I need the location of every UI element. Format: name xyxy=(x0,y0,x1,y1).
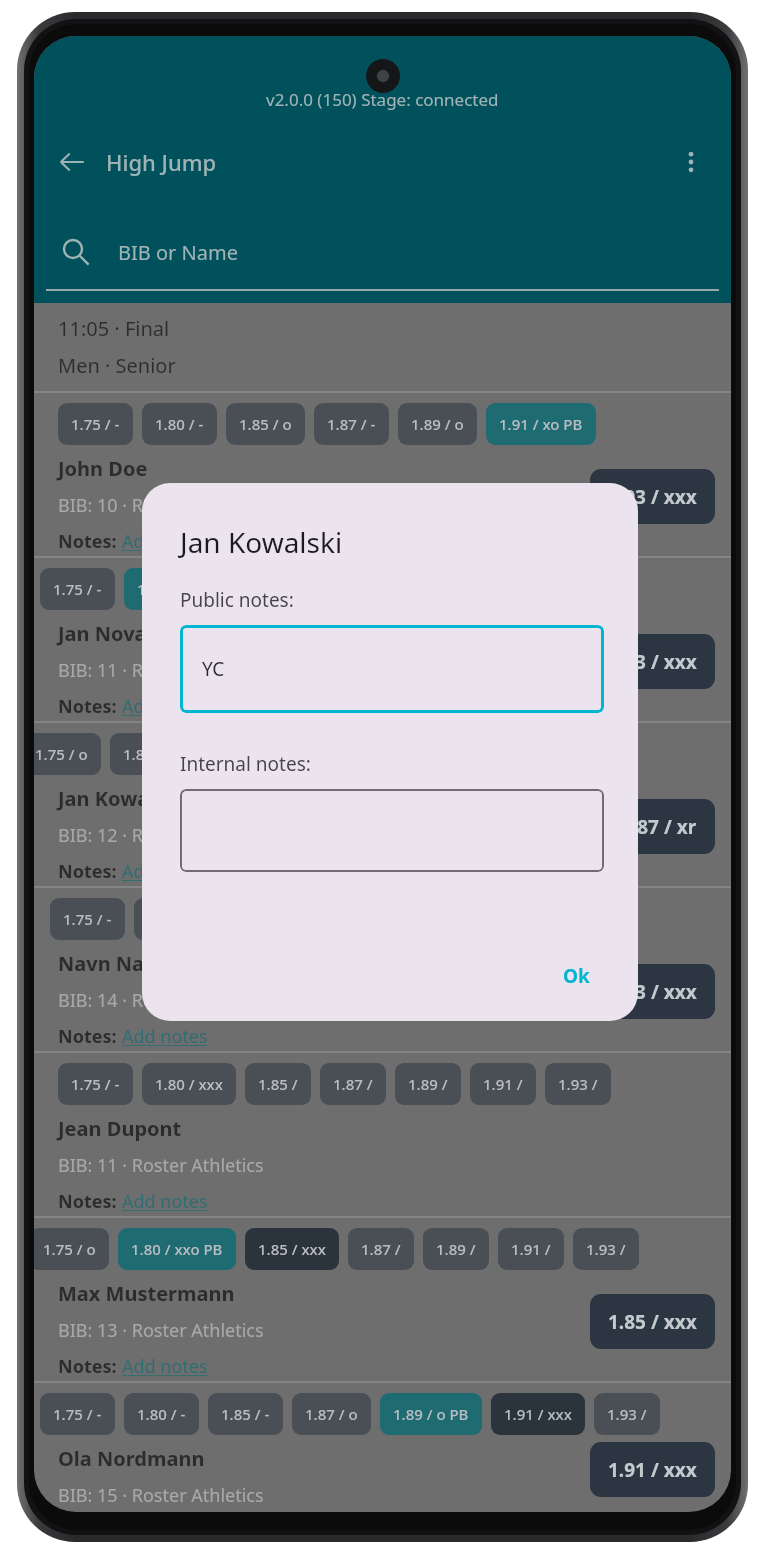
button[interactable]: 1.75 / o xyxy=(34,733,101,775)
button[interactable]: 1.80 / - xyxy=(142,403,217,445)
button[interactable]: Ok xyxy=(549,953,604,999)
button[interactable]: Add notes xyxy=(122,529,208,554)
button[interactable]: 1.91 / xo PB xyxy=(486,403,596,445)
staticText: Ok xyxy=(563,963,590,989)
staticText: Add notes xyxy=(122,859,208,884)
staticText: 1.80 / xxx xyxy=(155,1074,223,1094)
button[interactable]: Add notes xyxy=(122,1189,208,1214)
button[interactable]: 1.87 / xr xyxy=(603,799,715,854)
button[interactable]: 1.75 / o xyxy=(34,1218,731,1381)
button[interactable]: 1.93 / xyxy=(573,1228,639,1270)
button[interactable]: 1.87 / o xyxy=(292,1393,371,1435)
staticText: BIB: 11 · Roster Athletics xyxy=(58,658,264,683)
button[interactable]: 1.87 / xyxy=(320,1063,386,1105)
button[interactable]: Add notes xyxy=(122,694,208,719)
staticText: 1.91 / xxx xyxy=(504,1404,572,1424)
button[interactable]: 1.75 / - xyxy=(34,888,731,1051)
button[interactable]: 1.75 / - xyxy=(58,1063,133,1105)
staticText: 1.85 / xxx xyxy=(258,1239,326,1259)
button[interactable]: Back xyxy=(48,138,96,186)
staticText: Navn Navnesen xyxy=(58,950,216,977)
button[interactable]: 1.80 / xxx xyxy=(142,1063,236,1105)
button[interactable]: 1.85 / o xyxy=(226,403,305,445)
button[interactable]: 1.85 / xxx xyxy=(590,1294,715,1349)
button[interactable]: 1.85 / o xyxy=(198,733,277,775)
button[interactable]: More options xyxy=(667,138,715,186)
button[interactable]: 1.75 / - xyxy=(58,403,133,445)
button[interactable]: 1.75 / o xyxy=(34,723,731,886)
button[interactable]: YC xyxy=(180,625,604,713)
button[interactable]: 1.75 / - xyxy=(34,558,731,721)
button[interactable]: Add notes xyxy=(122,859,208,884)
button[interactable]: 1.87 / xyxy=(348,1228,414,1270)
button[interactable] xyxy=(180,789,604,872)
button[interactable]: 1.93 / xxx xyxy=(590,469,715,524)
staticText: Ola Nordmann xyxy=(58,1445,205,1472)
button[interactable]: 1.89 / xyxy=(423,1228,489,1270)
staticText: Notes: xyxy=(58,1024,122,1049)
button[interactable]: 1.75 / - xyxy=(40,1393,115,1435)
button[interactable]: 1.85 / xxx xyxy=(245,1228,339,1270)
button[interactable]: 1.80 / o xyxy=(124,568,203,610)
button[interactable]: 1.93 / xxx xyxy=(590,634,715,689)
staticText: 1.75 / o xyxy=(35,744,88,764)
staticText: Notes: xyxy=(58,1189,122,1214)
staticText: Notes: xyxy=(58,1354,122,1379)
button[interactable]: 1.75 / o xyxy=(34,1228,109,1270)
button[interactable]: 1.75 / - xyxy=(40,568,115,610)
button[interactable]: 1.80 / o xyxy=(110,733,189,775)
button[interactable]: 1.93 / xxx xyxy=(590,964,715,1019)
staticText: 1.80 / xxo PB xyxy=(131,1239,223,1259)
button[interactable]: 1.80 / o xyxy=(134,898,213,940)
button[interactable]: 1.91 / xyxy=(470,1063,536,1105)
staticText: Max Mustermann xyxy=(58,1280,235,1307)
button[interactable]: 1.85 / xyxy=(245,1063,311,1105)
button[interactable]: 1.91 / xxx xyxy=(590,1442,715,1497)
button[interactable]: 1.75 / - xyxy=(50,898,125,940)
button[interactable]: 1.91 / xxx xyxy=(491,1393,585,1435)
staticText: 1.93 / xxx xyxy=(608,979,697,1005)
button[interactable]: 1.87 / xo xyxy=(286,733,373,775)
staticText: 1.91 / xyxy=(483,1074,523,1094)
staticText: 1.75 / - xyxy=(71,1074,120,1094)
button[interactable]: 1.85 / o xyxy=(212,568,291,610)
button[interactable]: Add notes xyxy=(122,1354,208,1379)
button[interactable]: 1.91 / xyxy=(498,1228,564,1270)
button[interactable]: 1.89 / o xyxy=(398,403,477,445)
staticText: 1.93 / xyxy=(607,1404,647,1424)
button[interactable]: 1.85 / - xyxy=(208,1393,283,1435)
staticText: 1.85 / o xyxy=(211,744,264,764)
button[interactable]: Add notes xyxy=(122,1024,208,1049)
button[interactable]: 1.80 / - xyxy=(124,1393,199,1435)
button[interactable]: 1.89 / xyxy=(395,1063,461,1105)
staticText: John Doe xyxy=(58,455,148,482)
staticText: BIB: 11 · Roster Athletics xyxy=(58,1153,264,1178)
button[interactable]: 1.89 / o PB xyxy=(380,1393,482,1435)
staticText: 1.89 / o PB xyxy=(393,1404,469,1424)
button[interactable]: 1.75 / - xyxy=(34,1383,731,1512)
button[interactable]: 1.80 / xxo PB xyxy=(118,1228,236,1270)
button[interactable]: 1.93 / xyxy=(545,1063,611,1105)
button[interactable]: 1.93 / xyxy=(594,1393,660,1435)
staticText: Internal notes: xyxy=(180,751,311,777)
staticText: 1.85 / xxx xyxy=(608,1309,697,1335)
button[interactable]: 1.87 / - xyxy=(314,403,389,445)
button[interactable]: BIB or Name xyxy=(34,229,731,275)
button[interactable]: 1.75 / - xyxy=(34,1053,731,1216)
button[interactable]: 1.75 / - xyxy=(34,393,731,556)
staticText: 1.85 / o xyxy=(239,414,292,434)
